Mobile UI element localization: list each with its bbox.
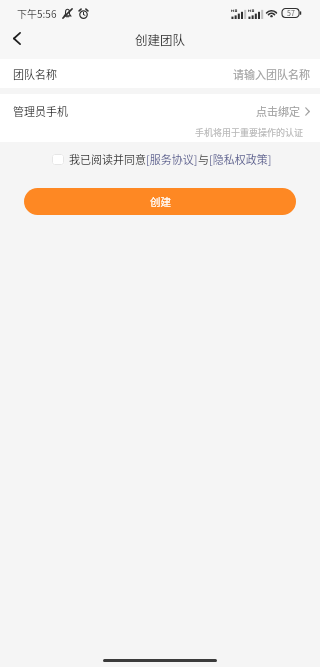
staticText: 我已阅读并同意 bbox=[69, 151, 146, 167]
button[interactable]: 管理员手机 bbox=[0, 94, 320, 142]
button[interactable]: 我已阅读并同意 bbox=[0, 151, 320, 169]
button[interactable]: 团队名称 bbox=[0, 59, 320, 88]
staticText: 57 bbox=[287, 8, 295, 18]
staticText: 创建 bbox=[150, 194, 171, 209]
staticText: [隐私权政策] bbox=[209, 151, 272, 167]
button[interactable]: Back bbox=[0, 21, 34, 56]
staticText: 请输入团队名称 bbox=[233, 66, 310, 82]
staticText: 点击绑定 bbox=[256, 103, 300, 119]
staticText: 创建团队 bbox=[135, 30, 186, 48]
staticText: [服务协议] bbox=[146, 151, 198, 167]
staticText: 与 bbox=[198, 151, 209, 167]
staticText: 下午5:56 bbox=[17, 6, 57, 20]
staticText: 手机将用于重要操作的认证 bbox=[195, 126, 304, 139]
button[interactable]: 创建 bbox=[24, 188, 296, 215]
staticText: 团队名称 bbox=[13, 66, 57, 82]
staticText: 管理员手机 bbox=[13, 103, 68, 119]
